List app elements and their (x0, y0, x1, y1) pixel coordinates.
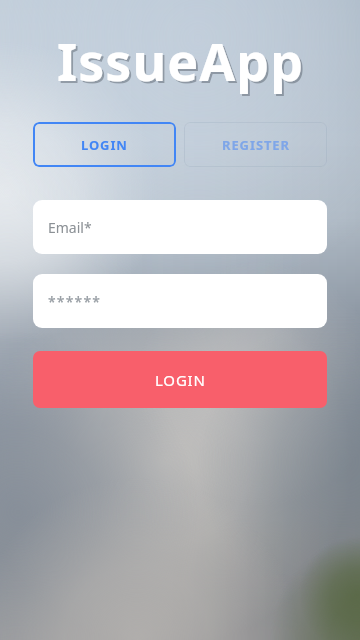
staticText: IssueApp (57, 25, 304, 96)
button[interactable]: LOGIN (33, 351, 327, 408)
staticText: ****** (48, 292, 102, 311)
button[interactable]: REGISTER (184, 122, 327, 167)
staticText: LOGIN (81, 136, 128, 154)
staticText: IssueApp (59, 27, 306, 98)
button[interactable]: Email* (33, 200, 327, 254)
button[interactable]: LOGIN (33, 122, 176, 167)
staticText: LOGIN (155, 370, 206, 390)
staticText: Email* (48, 218, 92, 237)
button[interactable]: ****** (33, 274, 327, 328)
staticText: REGISTER (222, 136, 290, 154)
